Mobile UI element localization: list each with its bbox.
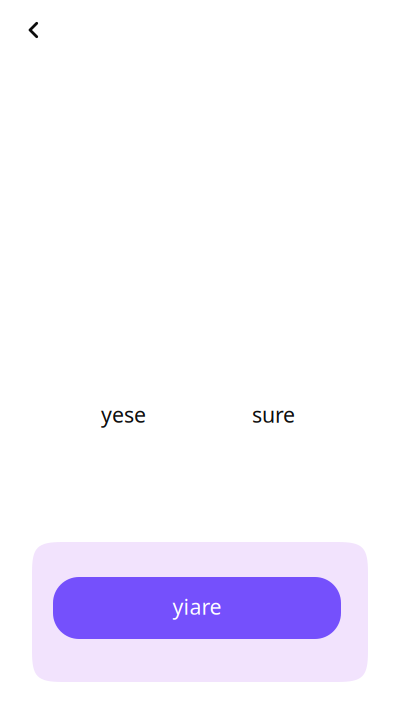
- staticText: sure: [252, 400, 295, 429]
- staticText: yiare: [172, 592, 221, 621]
- button[interactable]: yiare: [53, 577, 341, 639]
- button[interactable]: Back: [12, 8, 56, 52]
- staticText: yese: [101, 400, 146, 429]
